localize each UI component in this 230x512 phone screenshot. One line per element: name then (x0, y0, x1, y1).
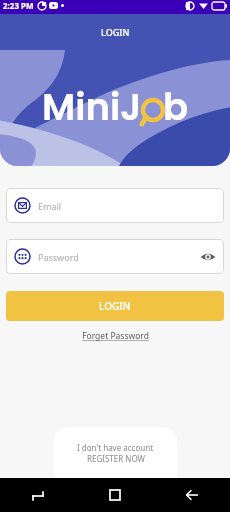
button[interactable]: Back (153, 478, 230, 512)
button[interactable]: LOGIN (6, 291, 224, 321)
button[interactable]: Password (6, 239, 224, 274)
staticText: MiniJ (42, 81, 142, 133)
staticText: REGISTER NOW (87, 453, 145, 464)
button[interactable]: Email (6, 188, 224, 223)
button[interactable]: Home (76, 478, 153, 512)
button[interactable]: Recents (0, 478, 76, 512)
button[interactable]: I don't have account (54, 427, 177, 478)
staticText: b (163, 81, 189, 133)
staticText: I don't have account (77, 442, 154, 453)
staticText: 2:23 PM (3, 0, 34, 11)
button[interactable]: Show password (198, 247, 218, 267)
button[interactable]: LOGIN (101, 26, 130, 38)
staticText: Email (38, 200, 62, 212)
button[interactable]: Forget Password (82, 330, 149, 342)
staticText: LOGIN (99, 299, 131, 313)
staticText: Password (38, 251, 79, 263)
